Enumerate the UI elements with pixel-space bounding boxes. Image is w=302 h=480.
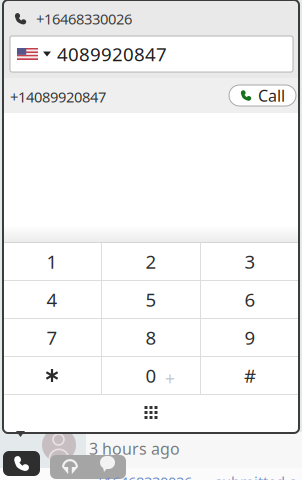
- button[interactable]: #: [201, 357, 299, 394]
- staticText: 0: [145, 363, 156, 388]
- button[interactable]: 7: [3, 319, 101, 356]
- staticText: 8: [145, 325, 156, 350]
- staticText: 3: [244, 249, 255, 274]
- staticText: +16468330026 — submitted a request: [96, 472, 302, 480]
- button[interactable]: 1: [3, 243, 101, 280]
- staticText: 9: [244, 325, 255, 350]
- button[interactable]: 9: [201, 319, 299, 356]
- staticText: #: [244, 363, 256, 388]
- staticText: 3 hours ago: [89, 438, 180, 459]
- button[interactable]: 3: [201, 243, 299, 280]
- button[interactable]: Calls: [3, 451, 40, 476]
- staticText: Call: [258, 85, 285, 106]
- staticText: 7: [46, 325, 57, 350]
- button[interactable]: 5: [102, 281, 200, 318]
- staticText: 4089920847: [57, 42, 167, 66]
- button[interactable]: 6: [201, 281, 299, 318]
- staticText: 4: [46, 287, 57, 312]
- button[interactable]: 8: [102, 319, 200, 356]
- staticText: 6: [244, 287, 255, 312]
- button[interactable]: Call: [229, 85, 296, 106]
- staticText: 5: [145, 287, 156, 312]
- staticText: +: [165, 367, 175, 390]
- button[interactable]: [3, 357, 101, 394]
- button[interactable]: Audio: [61, 458, 79, 476]
- button[interactable]: Messages: [100, 456, 115, 472]
- staticText: +16468330026: [36, 9, 132, 28]
- staticText: 2: [145, 249, 156, 274]
- button[interactable]: 4: [3, 281, 101, 318]
- button[interactable]: Show keypad: [3, 395, 299, 430]
- button[interactable]: Country code: [10, 37, 57, 71]
- staticText: +14089920847: [10, 87, 106, 106]
- staticText: 1: [46, 249, 57, 274]
- button[interactable]: 2: [102, 243, 200, 280]
- button[interactable]: 0: [102, 357, 200, 394]
